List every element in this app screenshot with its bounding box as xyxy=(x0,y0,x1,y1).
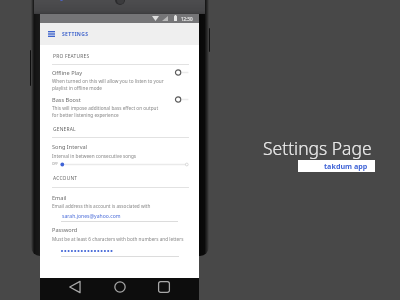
staticText: Settings Page xyxy=(263,136,372,160)
button[interactable]: Offline Play xyxy=(40,65,199,91)
staticText: for better listening experience xyxy=(52,112,119,118)
staticText: Offline Play xyxy=(52,69,82,77)
staticText: Bass Boost xyxy=(52,96,81,104)
staticText: Email address this account is associated… xyxy=(52,203,151,209)
staticText: takdum app xyxy=(324,161,368,171)
staticText: Email xyxy=(52,194,67,202)
staticText: GENERAL xyxy=(53,126,76,133)
staticText: 12:30 xyxy=(181,16,193,22)
staticText: Song Interval xyxy=(52,143,88,151)
staticText: This will impose additional bass effect … xyxy=(52,105,159,111)
button[interactable]: Back xyxy=(65,277,85,297)
button[interactable]: Recents xyxy=(154,277,174,297)
staticText: Must be at least 6 characters with both … xyxy=(52,236,184,242)
button[interactable]: Home xyxy=(110,277,130,297)
staticText: sarah.jones@yahoo.com xyxy=(62,213,121,220)
staticText: PRO FEATURES xyxy=(53,53,90,60)
staticText: Password xyxy=(52,226,78,234)
staticText: When turned on this will allow you to li… xyxy=(52,78,164,84)
staticText: OFF xyxy=(52,162,58,166)
staticText: ACCOUNT xyxy=(53,175,78,182)
staticText: Interval in between consecutive songs xyxy=(52,153,137,159)
button[interactable]: sarah.jones@yahoo.com xyxy=(61,210,178,222)
staticText: SETTINGS xyxy=(62,31,89,38)
staticText: playlist in offline mode xyxy=(52,85,102,91)
button[interactable]: Password field xyxy=(61,246,179,256)
button[interactable]: Bass Boost xyxy=(40,92,199,118)
button[interactable]: takdum app xyxy=(298,160,375,172)
button[interactable]: Open navigation menu xyxy=(43,26,59,42)
